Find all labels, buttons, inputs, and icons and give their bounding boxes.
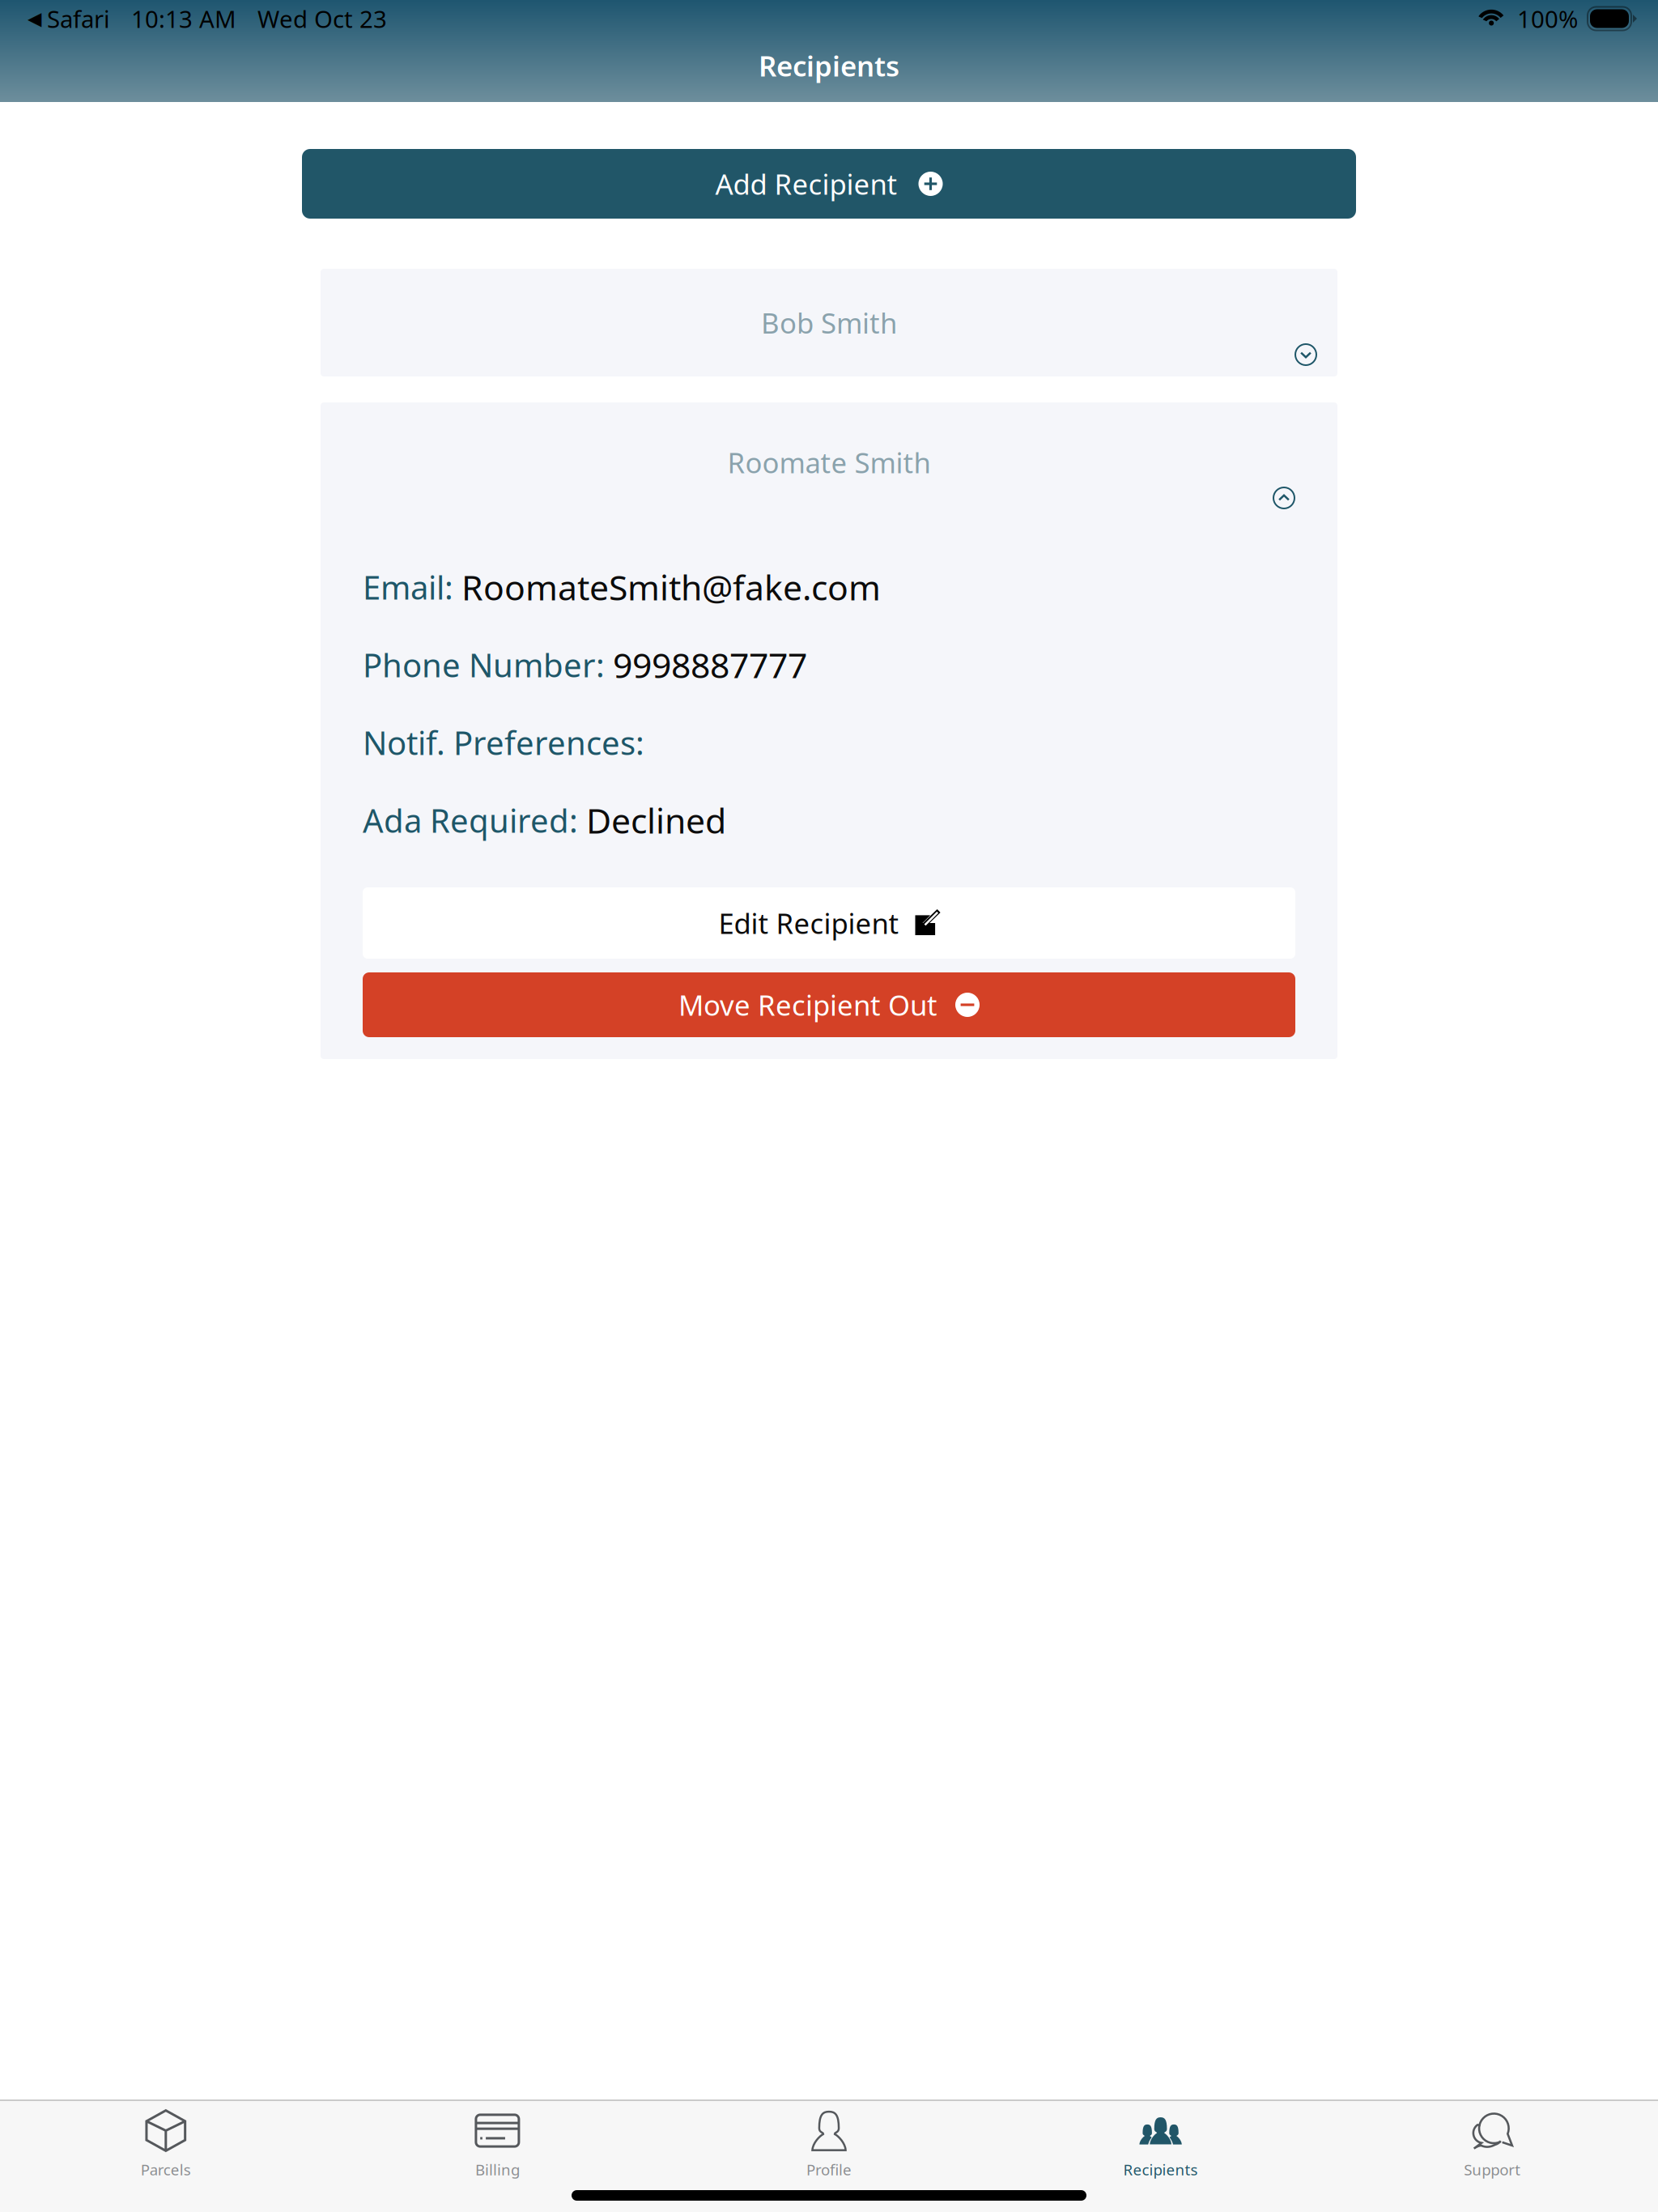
button[interactable]: Edit Recipient — [363, 887, 1295, 959]
staticText: 10:13 AM — [131, 3, 236, 34]
button[interactable]: Profile — [663, 2101, 995, 2212]
staticText: Phone Number: — [363, 643, 613, 686]
staticText: Declined — [586, 797, 726, 843]
button[interactable]: Parcels — [0, 2101, 332, 2212]
button[interactable]: Move Recipient Out — [363, 972, 1295, 1037]
staticText: 100% — [1517, 3, 1578, 34]
staticText: Roomate Smith — [727, 444, 931, 481]
staticText: Parcels — [141, 2159, 191, 2179]
staticText: Bob Smith — [761, 304, 897, 341]
staticText: Support — [1464, 2159, 1521, 2179]
staticText: Billing — [475, 2159, 520, 2179]
staticText: Safari — [47, 3, 110, 34]
staticText: Recipients — [1123, 2159, 1198, 2179]
staticText: Ada Required: — [363, 799, 586, 842]
staticText: RoomateSmith@fake.com — [461, 564, 881, 610]
staticText: Wed Oct 23 — [257, 3, 387, 34]
staticText: Edit Recipient — [718, 904, 899, 942]
button[interactable]: Support — [1326, 2101, 1658, 2212]
staticText: Recipients — [759, 47, 899, 84]
staticText: Email: — [363, 565, 461, 608]
staticText: ◀ — [28, 8, 41, 29]
staticText: 9998887777 — [613, 642, 807, 688]
button[interactable]: Billing — [332, 2101, 663, 2212]
staticText: Notif. Preferences: — [363, 721, 644, 764]
staticText: Profile — [806, 2159, 852, 2179]
button[interactable]: Bob Smith — [321, 269, 1337, 376]
staticText: Move Recipient Out — [678, 986, 937, 1023]
staticText: Add Recipient — [715, 165, 897, 202]
button[interactable]: Add Recipient — [302, 149, 1356, 219]
button[interactable]: Recipients — [995, 2101, 1326, 2212]
